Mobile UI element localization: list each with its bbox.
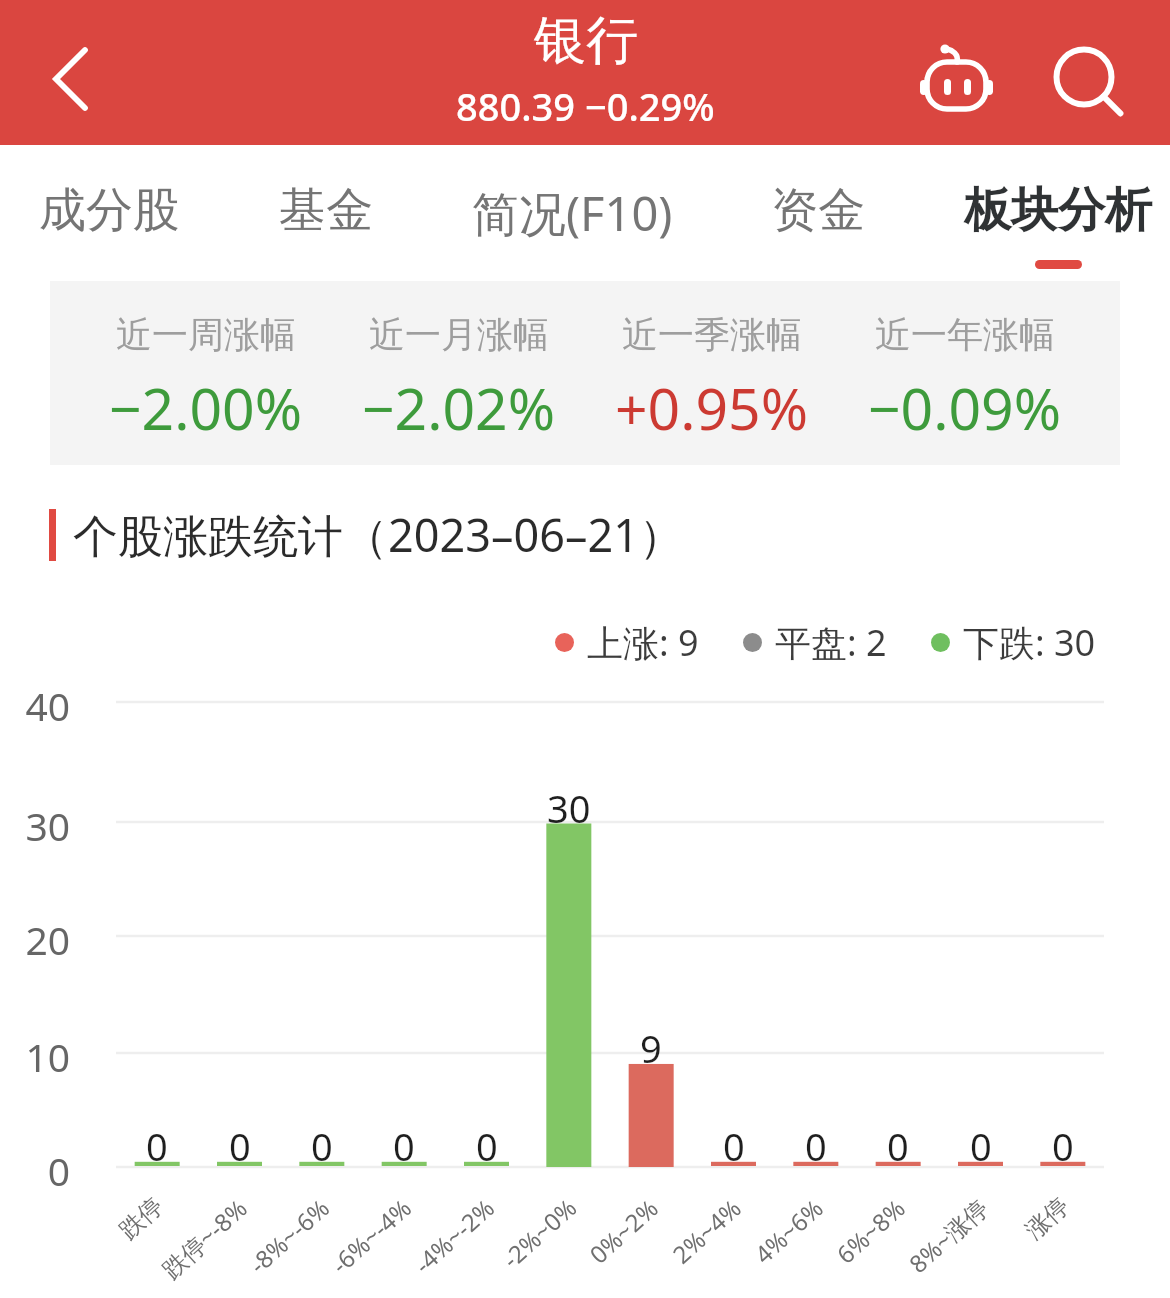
staticText: 0 (723, 1120, 745, 1162)
staticText: −2.02% (362, 369, 556, 447)
staticText: 2%~4% (665, 1191, 748, 1270)
staticText: −2.00% (109, 369, 303, 447)
staticText: 30 (547, 782, 591, 824)
staticText: 880.39 −0.29% (456, 80, 715, 132)
button[interactable]: Search (1030, 35, 1140, 110)
staticText: 0 (229, 1120, 251, 1162)
staticText: 跌停~-8% (155, 1191, 254, 1285)
staticText: +0.95% (615, 369, 809, 447)
staticText: 成分股 (39, 181, 180, 240)
staticText: 跌停 (113, 1191, 169, 1245)
staticText: 0 (393, 1120, 415, 1162)
staticText: 个股涨跌统计（2023–06–21） (73, 504, 684, 565)
staticText: 0 (970, 1120, 992, 1162)
staticText: 上涨: 9 (587, 618, 699, 667)
staticText: 近一周涨幅 (116, 312, 296, 357)
staticText: 0 (805, 1120, 827, 1162)
staticText: 0 (1052, 1120, 1074, 1162)
staticText: 下跌: 30 (963, 618, 1096, 667)
button[interactable]: 简况(F10) (472, 145, 673, 281)
staticText: 30 (25, 799, 70, 852)
button[interactable]: 资金 (771, 145, 865, 281)
staticText: 近一月涨幅 (369, 312, 549, 357)
staticText: -6%~-4% (324, 1191, 418, 1280)
staticText: 9 (640, 1022, 662, 1064)
staticText: 近一季涨幅 (622, 312, 802, 357)
staticText: 平盘: 2 (775, 618, 887, 667)
button[interactable]: Back (10, 0, 130, 145)
staticText: 近一年涨幅 (875, 312, 1055, 357)
button[interactable]: AI assistant (902, 35, 1012, 110)
staticText: 0 (47, 1144, 70, 1197)
button[interactable]: 基金 (279, 145, 373, 281)
staticText: 6%~8% (829, 1191, 912, 1270)
staticText: -8%~-6% (242, 1191, 336, 1280)
staticText: 10 (25, 1030, 70, 1083)
staticText: 0%~2% (582, 1191, 665, 1270)
staticText: 20 (25, 913, 70, 966)
staticText: -4%~-2% (407, 1191, 501, 1280)
staticText: 0 (887, 1120, 909, 1162)
staticText: 0 (146, 1120, 168, 1162)
staticText: 涨停 (1019, 1191, 1075, 1245)
staticText: 银行 (534, 8, 638, 74)
staticText: -2%~0% (495, 1191, 583, 1275)
staticText: 简况(F10) (472, 181, 673, 245)
staticText: 基金 (279, 181, 373, 240)
button[interactable]: 板块分析 (964, 145, 1152, 281)
staticText: 4%~6% (747, 1191, 830, 1270)
staticText: 板块分析 (964, 181, 1152, 240)
button[interactable]: 成分股 (39, 145, 180, 281)
staticText: 0 (311, 1120, 333, 1162)
staticText: −0.09% (868, 369, 1062, 447)
staticText: 0 (476, 1120, 498, 1162)
staticText: 40 (25, 679, 70, 732)
staticText: 资金 (771, 181, 865, 240)
staticText: 8%~涨停 (902, 1191, 995, 1280)
